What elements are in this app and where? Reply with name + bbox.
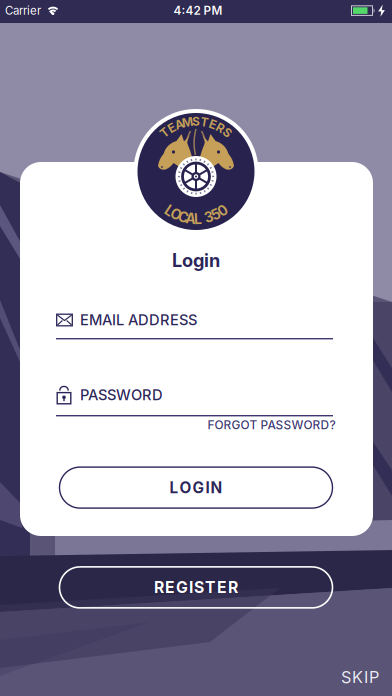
- staticText: A: [185, 210, 195, 227]
- staticText: O: [170, 206, 181, 223]
- staticText: FORGOT PASSWORD?: [207, 418, 335, 432]
- staticText: E: [168, 121, 175, 135]
- staticText: T: [200, 115, 208, 129]
- staticText: 3: [204, 209, 213, 226]
- staticText: T: [160, 125, 168, 140]
- staticText: S K I P: [341, 667, 379, 687]
- staticText: S: [223, 125, 231, 140]
- staticText: 0: [218, 202, 227, 219]
- button[interactable]: FORGOT PASSWORD?: [207, 418, 335, 432]
- staticText: 5: [211, 206, 220, 223]
- staticText: L O G I N: [169, 478, 222, 497]
- staticText: Carrier: [5, 4, 41, 17]
- button[interactable]: EMAIL ADDRESS: [56, 307, 333, 333]
- staticText: M: [182, 115, 193, 129]
- button[interactable]: PASSWORD: [56, 382, 333, 408]
- staticText: Login: [172, 249, 220, 271]
- staticText: R: [216, 121, 224, 135]
- staticText: 4:42 PM: [173, 3, 222, 18]
- button[interactable]: S K I P: [341, 667, 379, 687]
- button[interactable]: R E G I S T E R: [59, 567, 332, 608]
- staticText: C: [178, 209, 188, 226]
- button[interactable]: L O G I N: [59, 467, 332, 508]
- staticText: A: [175, 117, 184, 132]
- staticText: PASSWORD: [80, 386, 163, 404]
- staticText: E: [209, 117, 216, 132]
- staticText: R E G I S T E R: [154, 578, 238, 597]
- staticText: L: [194, 211, 202, 227]
- staticText: L: [165, 202, 173, 219]
- staticText: [202, 210, 205, 227]
- staticText: EMAIL ADDRESS: [80, 311, 197, 329]
- staticText: S: [192, 114, 200, 129]
